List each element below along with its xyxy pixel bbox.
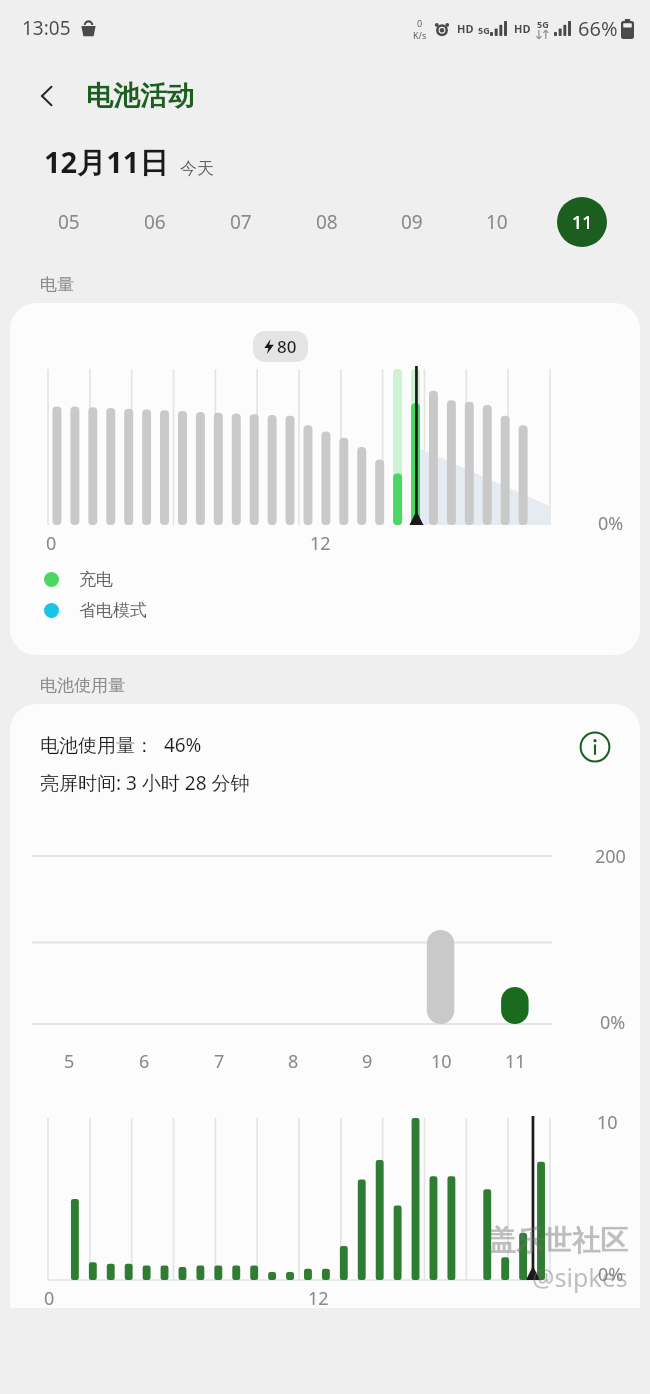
staticText: 盖乐世社区 [488, 1223, 628, 1258]
staticText: 11 [505, 1049, 526, 1074]
staticText: 电池使用量 [40, 675, 125, 696]
staticText: 8 [288, 1049, 299, 1074]
staticText: 12月11日 [44, 142, 169, 182]
staticText: HD [514, 21, 531, 36]
staticText: 充电 [79, 569, 113, 590]
button[interactable]: Back [24, 73, 70, 119]
staticText: 200 [595, 844, 626, 869]
staticText: 9 [362, 1049, 373, 1074]
button[interactable]: 09 [369, 209, 454, 235]
button[interactable]: 07 [198, 209, 284, 235]
staticText: 省电模式 [79, 600, 147, 621]
button[interactable]: 11 [539, 197, 624, 247]
staticText: 12 [308, 1286, 329, 1308]
staticText: 0 [417, 17, 423, 29]
staticText: 电池活动 [86, 79, 194, 113]
button[interactable]: Information [574, 726, 616, 768]
staticText: 5G [537, 18, 549, 30]
staticText: 13:05 [22, 15, 71, 41]
staticText: 0 [46, 531, 57, 556]
staticText: @sipkes [532, 1260, 628, 1294]
staticText: 11 [572, 210, 593, 235]
staticText: 10 [431, 1049, 452, 1074]
staticText: 电池使用量： 46% [40, 732, 202, 758]
staticText: 5 [64, 1049, 75, 1074]
button[interactable]: 10 [454, 209, 539, 235]
staticText: 06 [144, 209, 166, 235]
staticText: 10 [597, 1110, 618, 1135]
staticText: 80 [277, 335, 297, 358]
staticText: K/s [413, 29, 427, 41]
staticText: 7 [214, 1049, 225, 1074]
staticText: 12 [310, 531, 331, 556]
staticText: 05 [58, 209, 80, 235]
staticText: HD [457, 21, 474, 36]
staticText: 5G [478, 24, 490, 36]
staticText: 0% [598, 1262, 624, 1287]
staticText: 6 [139, 1049, 150, 1074]
staticText: 10 [486, 209, 508, 235]
staticText: 亮屏时间: 3 小时 28 分钟 [40, 770, 250, 796]
button[interactable]: 05 [26, 209, 112, 235]
staticText: 0% [598, 511, 624, 536]
staticText: 66% [578, 15, 618, 42]
staticText: 0% [600, 1010, 626, 1035]
staticText: 08 [316, 209, 338, 235]
staticText: 0 [44, 1286, 55, 1308]
staticText: 今天 [180, 158, 214, 179]
staticText: 07 [230, 209, 252, 235]
staticText: 09 [401, 209, 423, 235]
staticText: 电量 [40, 274, 74, 295]
button[interactable]: 06 [112, 209, 198, 235]
button[interactable]: 08 [284, 209, 369, 235]
